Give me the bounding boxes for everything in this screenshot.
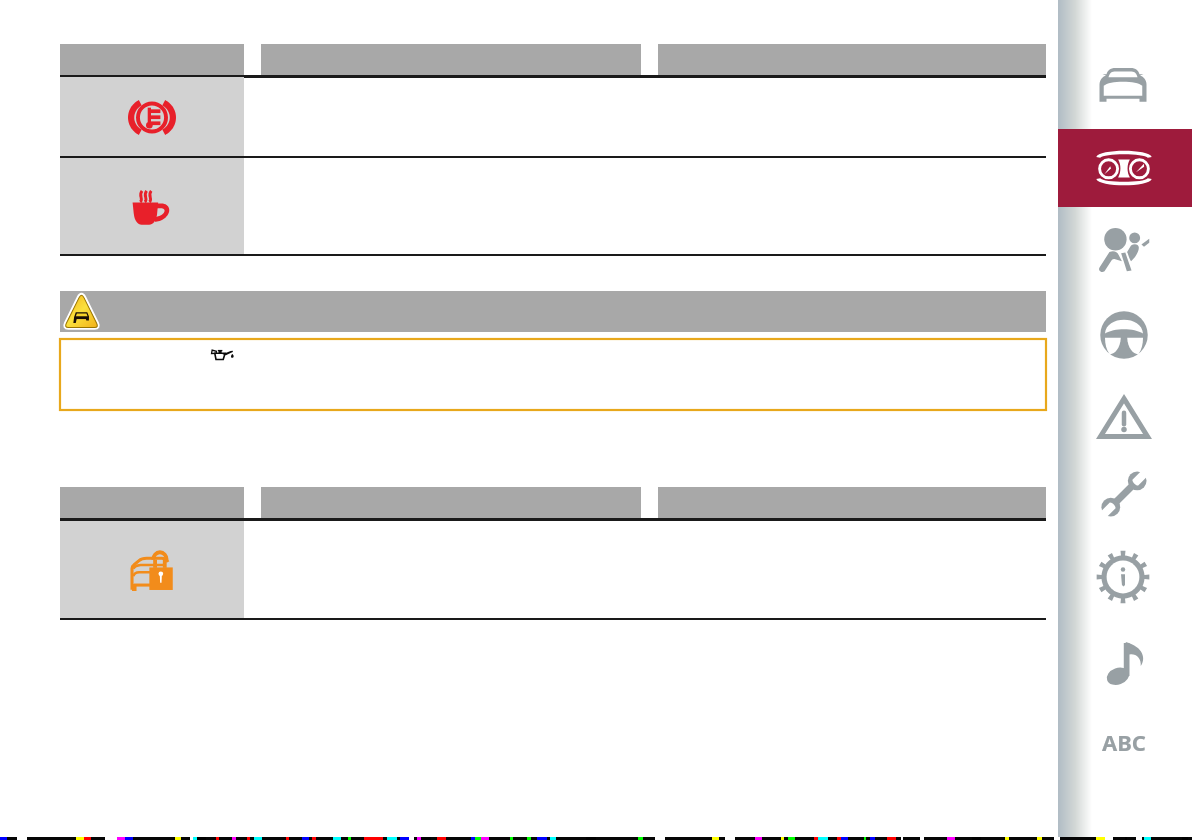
button[interactable]: Service [1100,470,1148,518]
button[interactable]: Brake fluid warning lamp [60,77,1046,156]
button[interactable]: ABC [1094,727,1154,757]
staticText: ABC [1102,727,1146,757]
button[interactable]: Vehicle [1098,66,1148,104]
button[interactable]: Steering [1098,310,1150,360]
button[interactable]: Warning [1099,396,1149,440]
button[interactable]: Instruments [1096,148,1152,188]
button[interactable]: Settings [1096,550,1150,604]
button[interactable]: Rest recommendation lamp [60,158,1046,254]
button[interactable]: Audio [1102,637,1146,687]
button[interactable]: Airbag [1098,228,1150,272]
button[interactable]: Vehicle locked lamp [60,521,1046,618]
